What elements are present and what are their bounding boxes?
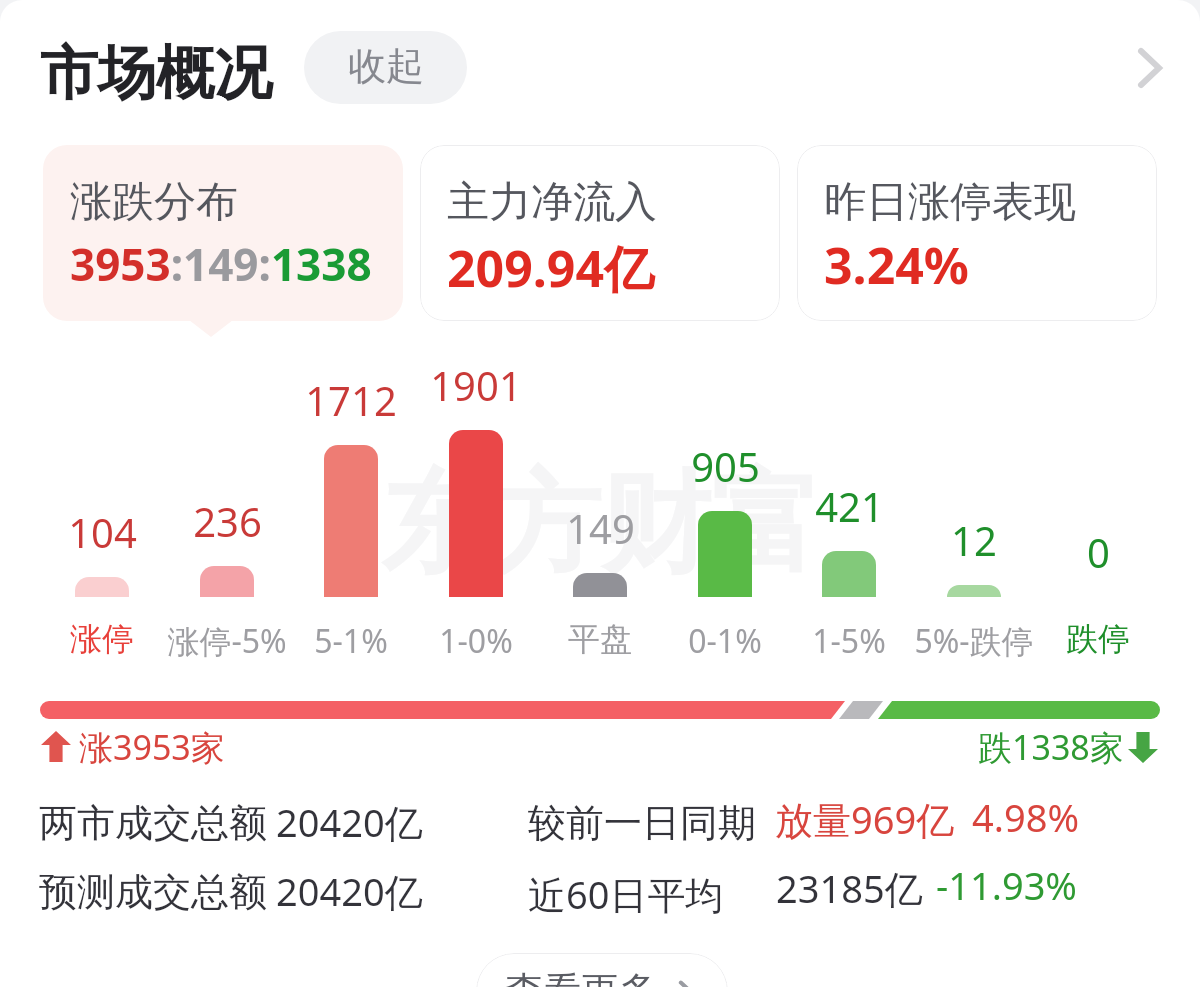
staticText: 20420亿: [276, 865, 423, 917]
staticText: 4.98%: [972, 791, 1079, 843]
staticText: 两市成交总额: [39, 799, 267, 847]
button[interactable]: [289, 360, 413, 660]
staticText: 3.24%: [824, 231, 969, 299]
staticText: 1-0%: [439, 619, 513, 663]
staticText: 查看更多: [505, 967, 657, 987]
button[interactable]: [165, 360, 289, 660]
button[interactable]: [1036, 360, 1160, 660]
staticText: 23185亿: [776, 862, 923, 914]
staticText: 平盘: [568, 619, 632, 659]
staticText: 涨停: [70, 619, 134, 659]
staticText: 市场概况: [40, 37, 272, 110]
staticText: 104: [68, 505, 137, 559]
button[interactable]: 查看更多: [476, 953, 728, 987]
button[interactable]: [787, 360, 911, 660]
staticText: 昨日涨停表现: [824, 176, 1076, 229]
button[interactable]: [663, 360, 787, 660]
staticText: 跌1338家: [978, 724, 1124, 770]
staticText: 1-5%: [812, 619, 886, 663]
button[interactable]: 昨日涨停表现: [797, 145, 1157, 321]
staticText: 1712: [305, 373, 397, 427]
staticText: -11.93%: [936, 859, 1077, 911]
staticText: 236: [193, 494, 262, 548]
staticText: 905: [691, 439, 760, 493]
staticText: 5%-跌停: [914, 619, 1034, 663]
staticText: 209.94亿: [447, 234, 655, 302]
staticText: 跌停: [1066, 619, 1130, 659]
button[interactable]: [538, 360, 662, 660]
staticText: 涨跌分布: [70, 176, 238, 229]
staticText: 涨停-5%: [167, 619, 287, 663]
button[interactable]: 打开详情 Open details: [1112, 30, 1188, 106]
staticText: 主力净流入: [447, 176, 657, 229]
staticText: 较前一日同期: [528, 799, 756, 847]
staticText: 12: [951, 513, 997, 567]
staticText: 预测成交总额: [39, 868, 267, 916]
staticText: 收起: [348, 42, 424, 90]
staticText: 1901: [430, 358, 522, 412]
staticText: 3953:149:1338: [70, 234, 372, 294]
staticText: 421: [815, 479, 884, 533]
button[interactable]: 主力净流入: [420, 145, 780, 321]
staticText: 5-1%: [314, 619, 388, 663]
staticText: 149: [566, 501, 635, 555]
staticText: 放量969亿: [775, 793, 955, 845]
button[interactable]: [40, 360, 164, 660]
staticText: 东方财富: [381, 455, 821, 594]
staticText: 0: [1087, 525, 1110, 579]
staticText: 20420亿: [276, 796, 423, 848]
button[interactable]: 涨跌分布: [43, 145, 403, 321]
staticText: 0-1%: [688, 619, 762, 663]
button[interactable]: [912, 360, 1036, 660]
button[interactable]: 收起: [304, 31, 467, 104]
staticText: 近60日平均: [528, 868, 724, 920]
staticText: 涨3953家: [79, 724, 225, 770]
button[interactable]: [414, 360, 538, 660]
